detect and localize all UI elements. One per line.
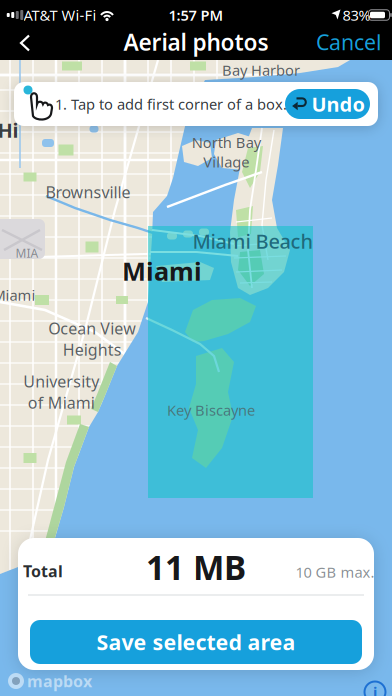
staticText: North Bay Village — [191, 132, 260, 171]
staticText: Brownsville — [45, 181, 130, 203]
button[interactable]: Map information — [364, 681, 385, 696]
staticText: Miami — [122, 254, 202, 288]
staticText: Total — [23, 560, 63, 582]
button[interactable]: Back — [18, 34, 31, 52]
staticText: Aerial photos — [123, 27, 268, 57]
staticText: Miami — [0, 285, 35, 305]
staticText: Save selected area — [96, 628, 295, 656]
staticText: University of Miami — [23, 371, 99, 413]
staticText: AT&T Wi-Fi — [23, 5, 96, 25]
staticText: Bay Harbor — [222, 60, 300, 80]
staticText: 83% — [342, 5, 370, 25]
staticText: Undo — [311, 91, 365, 117]
staticText: Key Biscayne — [167, 400, 255, 420]
staticText: MIA — [15, 245, 38, 261]
button[interactable]: Save selected area — [30, 620, 362, 664]
staticText: Ocean View Heights — [48, 318, 136, 360]
staticText: mapbox — [27, 670, 92, 692]
staticText: Cancel — [316, 28, 382, 56]
button[interactable]: Cancel — [316, 28, 382, 56]
button[interactable]: Undo — [285, 89, 370, 119]
staticText: 11 MB — [146, 545, 246, 589]
staticText: Hi — [0, 117, 18, 143]
staticText: 10 GB max. — [295, 562, 374, 582]
staticText: Miami Beach — [192, 228, 313, 254]
staticText: 1. Tap to add first corner of a box. — [55, 94, 287, 114]
staticText: 1:57 PM — [168, 5, 223, 25]
staticText: i — [373, 682, 377, 696]
